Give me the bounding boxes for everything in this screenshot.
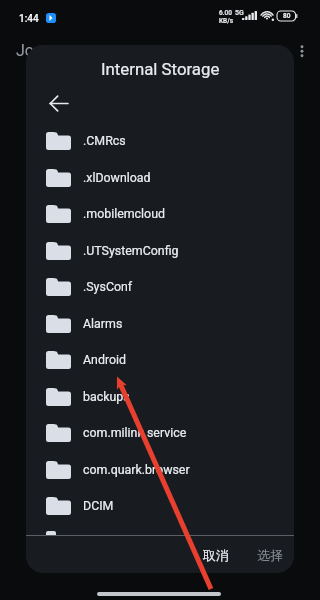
button[interactable]: com.milink.service bbox=[26, 414, 294, 451]
button[interactable]: Alarms bbox=[26, 305, 294, 342]
staticText: Alarms bbox=[83, 316, 123, 331]
staticText: .xlDownload bbox=[83, 170, 151, 185]
staticText: .SysConf bbox=[83, 279, 133, 294]
staticText: com.milink.service bbox=[83, 425, 187, 440]
staticText: .CMRcs bbox=[83, 133, 126, 148]
staticText: com.quark.browser bbox=[83, 462, 190, 477]
staticText: DCIM bbox=[83, 498, 114, 513]
button[interactable]: com.quark.browser bbox=[26, 451, 294, 488]
staticText: .UTSystemConfig bbox=[83, 243, 179, 258]
button[interactable]: .SysConf bbox=[26, 268, 294, 305]
button[interactable]: Android bbox=[26, 341, 294, 378]
staticText: Internal Storage bbox=[101, 59, 220, 79]
staticText: backups bbox=[83, 389, 130, 404]
button[interactable]: .xlDownload bbox=[26, 159, 294, 196]
staticText: 6.00 bbox=[219, 9, 232, 17]
staticText: Android bbox=[83, 352, 127, 367]
button[interactable]: .UTSystemConfig bbox=[26, 232, 294, 269]
staticText: Jo bbox=[16, 41, 34, 60]
staticText: 80 bbox=[283, 12, 291, 20]
button[interactable]: .CMRcs bbox=[26, 122, 294, 159]
button[interactable]: More options bbox=[291, 36, 313, 66]
staticText: 5G bbox=[235, 9, 244, 17]
staticText: .mobilemcloud bbox=[83, 206, 166, 221]
staticText: KB/s bbox=[219, 17, 234, 25]
button[interactable]: Back bbox=[40, 85, 76, 121]
button[interactable]: backups bbox=[26, 378, 294, 415]
button[interactable]: 选择 bbox=[243, 538, 294, 572]
staticText: 选择 bbox=[257, 547, 283, 563]
staticText: 取消 bbox=[203, 547, 229, 563]
button[interactable]: DCIM bbox=[26, 487, 294, 524]
staticText: 1:44 bbox=[19, 13, 39, 25]
button[interactable]: .mobilemcloud bbox=[26, 195, 294, 232]
button[interactable]: 取消 bbox=[189, 538, 243, 572]
